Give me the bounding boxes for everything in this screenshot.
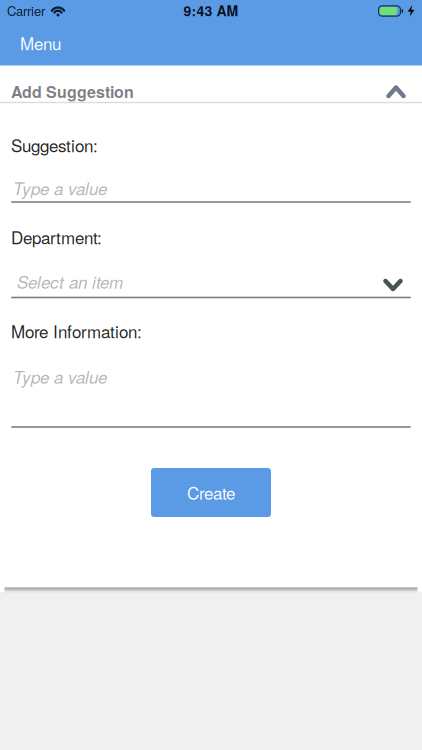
staticText: More Information:	[11, 319, 142, 343]
staticText: Menu	[20, 31, 61, 55]
staticText: Select an item	[17, 269, 123, 293]
button[interactable]: Suggestion text field	[11, 167, 411, 207]
staticText: Type a value	[13, 364, 107, 388]
staticText: Suggestion:	[11, 133, 98, 157]
staticText: 9:43 AM	[183, 0, 238, 20]
staticText: Create	[187, 480, 235, 505]
button[interactable]: Menu	[0, 21, 75, 65]
button[interactable]: More Information text field	[11, 352, 411, 428]
button[interactable]: Create	[151, 468, 271, 517]
staticText: Type a value	[13, 176, 107, 200]
staticText: Add Suggestion	[11, 80, 134, 103]
button[interactable]: Add Suggestion	[0, 65, 422, 102]
button[interactable]: Department picker	[11, 261, 411, 301]
staticText: Carrier	[7, 1, 45, 20]
staticText: Department:	[11, 225, 102, 249]
